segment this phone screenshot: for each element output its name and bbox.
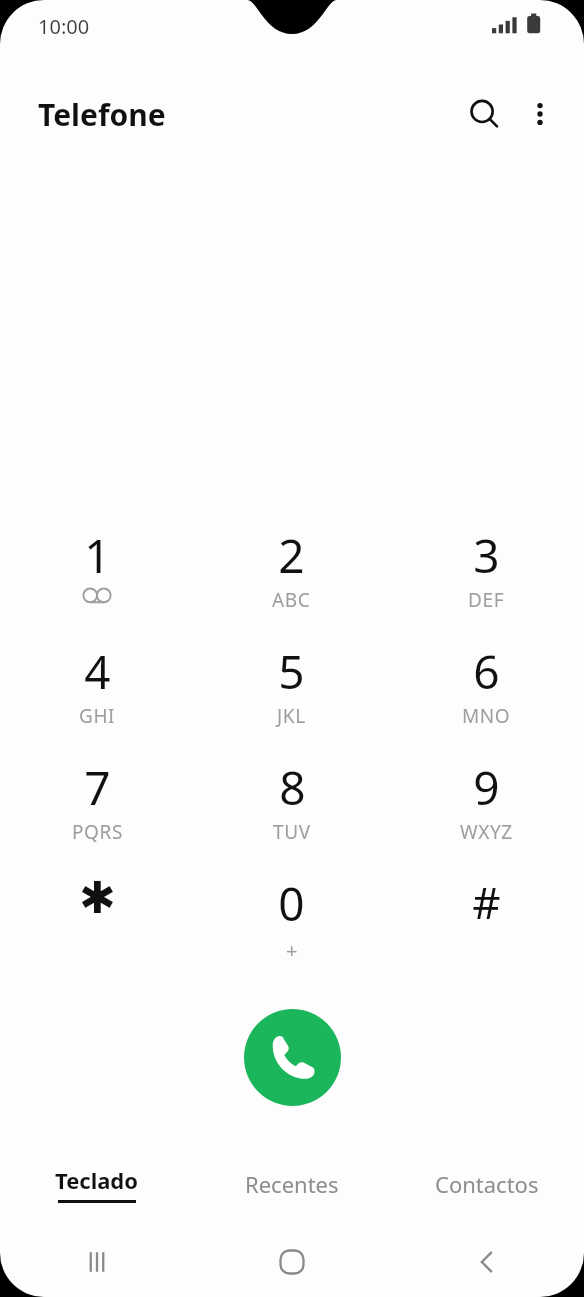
staticText: MNO: [462, 703, 511, 729]
button[interactable]: Teclado: [0, 1148, 194, 1220]
button[interactable]: 6: [389, 634, 584, 750]
staticText: 6: [473, 640, 500, 703]
staticText: 9: [473, 756, 500, 819]
staticText: JKL: [277, 703, 306, 729]
button[interactable]: 2: [194, 518, 389, 634]
staticText: 2: [278, 524, 305, 587]
button[interactable]: 8: [194, 750, 389, 866]
staticText: DEF: [468, 587, 505, 613]
staticText: ABC: [272, 587, 311, 613]
button[interactable]: #: [389, 866, 584, 982]
button[interactable]: Search: [456, 86, 512, 142]
staticText: 1: [84, 524, 111, 587]
staticText: +: [286, 937, 298, 964]
button[interactable]: 4: [0, 634, 194, 750]
staticText: Recentes: [245, 1169, 339, 1199]
button[interactable]: 1: [0, 518, 194, 634]
staticText: 5: [278, 640, 305, 703]
button[interactable]: 3: [389, 518, 584, 634]
staticText: Teclado: [55, 1165, 139, 1195]
staticText: TUV: [273, 819, 311, 845]
staticText: 10:00: [38, 13, 90, 40]
button[interactable]: 7: [0, 750, 194, 866]
staticText: 4: [84, 640, 111, 703]
staticText: 0: [278, 872, 305, 935]
button[interactable]: More options: [512, 86, 568, 142]
button[interactable]: ✱: [0, 866, 194, 982]
button[interactable]: Recentes: [194, 1148, 389, 1220]
staticText: ✱: [79, 872, 116, 923]
staticText: #: [472, 872, 501, 932]
button[interactable]: Recent apps: [0, 1230, 194, 1294]
staticText: 3: [473, 524, 500, 587]
staticText: 8: [279, 756, 306, 819]
button[interactable]: Call: [244, 1009, 341, 1106]
staticText: Contactos: [435, 1169, 539, 1199]
staticText: Telefone: [38, 94, 166, 135]
staticText: 7: [84, 756, 111, 819]
button[interactable]: 0: [194, 866, 389, 982]
button[interactable]: 5: [194, 634, 389, 750]
button[interactable]: 9: [389, 750, 584, 866]
staticText: WXYZ: [460, 819, 513, 845]
button[interactable]: Home: [194, 1230, 389, 1294]
staticText: GHI: [79, 703, 116, 729]
staticText: PQRS: [72, 819, 123, 845]
button[interactable]: Contactos: [389, 1148, 584, 1220]
button[interactable]: Back: [389, 1230, 584, 1294]
